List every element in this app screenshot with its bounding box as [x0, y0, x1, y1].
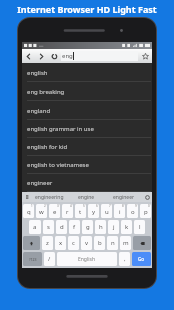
staticText: 2	[44, 204, 46, 208]
staticText: t	[79, 208, 82, 216]
staticText: ?123	[29, 257, 37, 262]
button[interactable]: Backspace	[133, 236, 151, 250]
button[interactable]: n	[107, 236, 118, 250]
staticText: england	[27, 107, 51, 115]
staticText: j	[113, 223, 115, 231]
button[interactable]: g	[82, 220, 93, 234]
staticText: r	[66, 208, 69, 216]
staticText: k	[125, 223, 129, 231]
button[interactable]: b	[94, 236, 105, 250]
staticText: v	[85, 239, 89, 247]
staticText: a	[33, 223, 37, 231]
button[interactable]: 6	[88, 204, 99, 218]
staticText: eng breaking	[27, 88, 65, 96]
button[interactable]: k	[121, 220, 132, 234]
staticText: english to vietnamese	[27, 161, 89, 169]
staticText: z	[46, 239, 49, 247]
staticText: 4	[70, 204, 72, 208]
staticText: engineer	[27, 179, 53, 187]
button[interactable]: 3	[49, 204, 60, 218]
staticText: Internet Browser HD Light Fast	[17, 3, 157, 15]
staticText: d	[60, 223, 64, 231]
staticText: 7	[109, 204, 111, 208]
button[interactable]: a	[29, 220, 41, 234]
button[interactable]: s	[43, 220, 54, 234]
staticText: o	[131, 208, 135, 216]
staticText: english grammar in use	[27, 125, 94, 133]
button[interactable]: engine	[68, 192, 105, 202]
button[interactable]: j	[108, 220, 119, 234]
button[interactable]: d	[56, 220, 67, 234]
button[interactable]: Reload	[48, 49, 61, 63]
button[interactable]: l	[134, 220, 145, 234]
button[interactable]: Go	[132, 252, 151, 266]
staticText: engineering	[35, 194, 64, 201]
button[interactable]: x	[55, 236, 66, 250]
staticText: n	[111, 239, 115, 247]
staticText: x	[59, 239, 63, 247]
staticText: /	[48, 255, 51, 263]
button[interactable]: english grammar in use	[23, 120, 151, 138]
staticText: y	[92, 208, 96, 216]
button[interactable]: engineer	[23, 174, 151, 192]
button[interactable]: English	[57, 252, 117, 266]
staticText: english for kid	[27, 143, 68, 151]
button[interactable]: z	[42, 236, 53, 250]
button[interactable]: f	[69, 220, 80, 234]
staticText: l	[139, 223, 141, 231]
button[interactable]: Back	[22, 49, 35, 63]
staticText: q	[27, 208, 31, 216]
button[interactable]: Symbols	[23, 252, 42, 266]
staticText: engine	[78, 194, 95, 201]
button[interactable]: 4	[62, 204, 73, 218]
button[interactable]: 5	[75, 204, 86, 218]
staticText: h	[99, 223, 103, 231]
button[interactable]: ,	[119, 252, 130, 266]
button[interactable]: More suggestions	[22, 192, 31, 202]
staticText: p	[144, 208, 148, 216]
button[interactable]: engineer	[105, 192, 142, 202]
staticText: b	[98, 239, 102, 247]
staticText: c	[72, 239, 75, 247]
button[interactable]: 7	[101, 204, 112, 218]
staticText: 1	[31, 204, 33, 208]
staticText: e	[53, 208, 57, 216]
button[interactable]: 8	[114, 204, 125, 218]
button[interactable]: c	[68, 236, 79, 250]
staticText: g	[86, 223, 90, 231]
staticText: 6	[96, 204, 98, 208]
button[interactable]: Bookmark	[138, 49, 152, 63]
staticText: m	[123, 239, 129, 247]
staticText: 3	[57, 204, 59, 208]
button[interactable]: eng breaking	[23, 82, 151, 101]
staticText: engineer	[113, 194, 135, 201]
staticText: eng	[62, 52, 73, 60]
staticText: 9	[135, 204, 137, 208]
button[interactable]: eng	[61, 51, 138, 61]
button[interactable]: 2	[36, 204, 47, 218]
button[interactable]: england	[23, 101, 151, 120]
button[interactable]: english for kid	[23, 138, 151, 156]
button[interactable]: v	[81, 236, 92, 250]
button[interactable]: m	[120, 236, 131, 250]
button[interactable]: /	[44, 252, 55, 266]
staticText: i	[119, 208, 121, 216]
staticText: english	[27, 69, 48, 77]
staticText: 5	[83, 204, 85, 208]
button[interactable]: 1	[23, 204, 34, 218]
staticText: f	[73, 223, 76, 231]
button[interactable]: Forward	[35, 49, 48, 63]
staticText: 8	[122, 204, 124, 208]
button[interactable]: engineering	[31, 192, 68, 202]
button[interactable]: Shift	[23, 236, 40, 250]
staticText: ,	[124, 255, 126, 263]
staticText: u	[105, 208, 109, 216]
button[interactable]: 9	[127, 204, 138, 218]
button[interactable]: 0	[140, 204, 151, 218]
button[interactable]: h	[95, 220, 106, 234]
button[interactable]: english	[23, 63, 151, 82]
staticText: English	[78, 256, 96, 263]
staticText: 0	[148, 204, 150, 208]
button[interactable]: Settings	[142, 192, 152, 202]
button[interactable]: english to vietnamese	[23, 156, 151, 174]
